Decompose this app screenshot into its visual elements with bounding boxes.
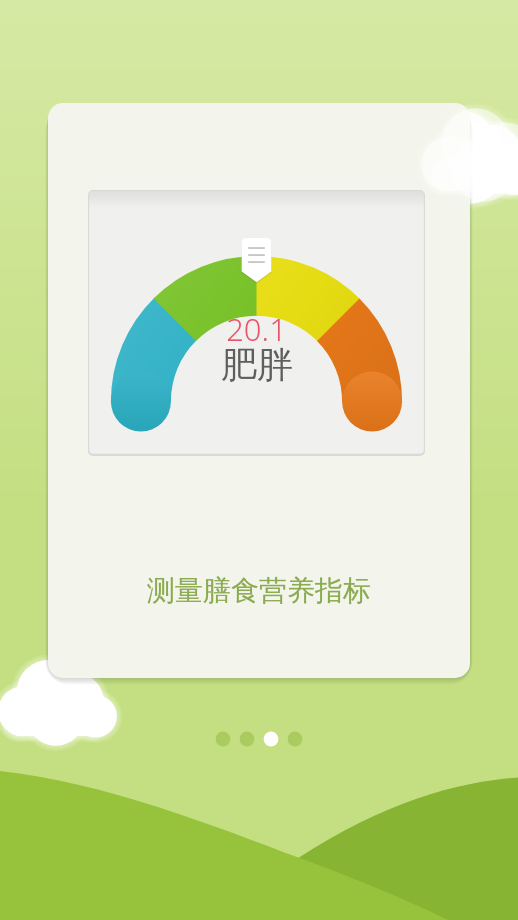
staticText: 测量膳食营养指标 — [147, 573, 371, 608]
button[interactable]: Page 3 of 4 — [204, 728, 314, 750]
staticText: 肥胖 — [221, 342, 293, 387]
staticText: 20.1 — [226, 308, 287, 350]
button[interactable]: 20.1 — [48, 103, 470, 678]
